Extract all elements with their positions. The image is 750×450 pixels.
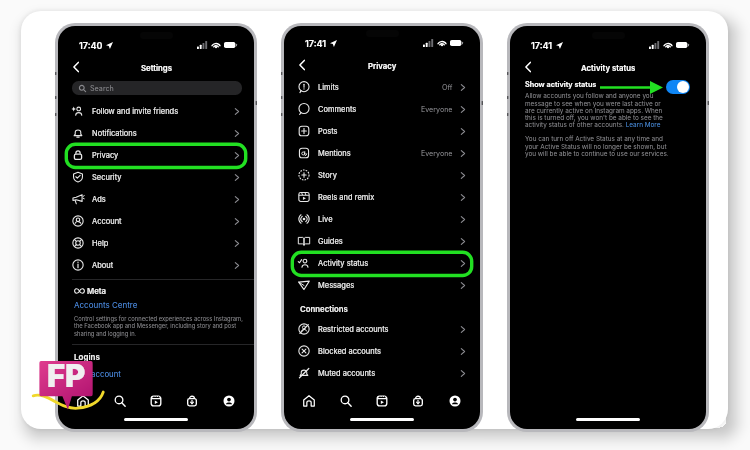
staticText: You can turn off Active Status at any ti… <box>525 135 671 157</box>
button[interactable]: Posts <box>284 120 480 142</box>
button[interactable]: Add account <box>74 369 121 378</box>
button[interactable]: Search <box>109 390 131 412</box>
button[interactable]: Reels and remix <box>284 186 480 208</box>
button[interactable]: Live <box>284 208 480 230</box>
staticText: Logins <box>74 352 100 362</box>
staticText: Privacy <box>92 151 119 160</box>
button[interactable]: Reels <box>371 390 393 412</box>
button[interactable]: Ads <box>58 188 254 210</box>
staticText: Posts <box>318 127 338 136</box>
staticText: Notifications <box>92 129 137 138</box>
staticText: Activity status <box>581 63 636 72</box>
button[interactable]: Comments <box>284 98 480 120</box>
button[interactable]: Search <box>72 81 242 95</box>
button[interactable]: Notifications <box>58 122 254 144</box>
button[interactable]: Restricted accounts <box>284 318 480 340</box>
button[interactable]: Guides <box>284 230 480 252</box>
staticText: Show activity status <box>525 80 597 89</box>
staticText: Connections <box>300 304 348 313</box>
staticText: Search <box>90 84 114 93</box>
button[interactable]: Shop <box>181 390 203 412</box>
button[interactable]: Security <box>58 166 254 188</box>
staticText: Privacy <box>368 61 397 70</box>
staticText: Everyone <box>421 105 453 114</box>
staticText: Everyone <box>421 149 453 158</box>
button[interactable]: Muted accounts <box>284 362 480 384</box>
button[interactable]: Messages <box>284 274 480 296</box>
button[interactable]: About <box>58 254 254 276</box>
button[interactable]: Activity status <box>284 252 480 274</box>
staticText: Muted accounts <box>318 369 376 378</box>
staticText: Off <box>442 83 453 92</box>
staticText: Ads <box>92 195 106 204</box>
staticText: Live <box>318 215 333 224</box>
button[interactable]: Mentions <box>284 142 480 164</box>
button[interactable]: Story <box>284 164 480 186</box>
staticText: Follow and invite friends <box>92 107 179 116</box>
staticText: Security <box>92 173 122 182</box>
button[interactable]: Search <box>335 390 357 412</box>
button[interactable]: Profile <box>218 390 240 412</box>
button[interactable]: Shop <box>407 390 429 412</box>
staticText: Comments <box>318 105 357 114</box>
button[interactable]: Home <box>298 390 320 412</box>
button[interactable]: Back <box>292 55 312 75</box>
button[interactable]: Back <box>518 57 538 77</box>
button[interactable]: Profile <box>444 390 466 412</box>
staticText: Account <box>92 217 122 226</box>
button[interactable]: Toggle show activity status <box>666 80 690 94</box>
button[interactable]: Accounts Centre <box>74 300 138 310</box>
button[interactable]: Help <box>58 232 254 254</box>
staticText: Restricted accounts <box>318 325 389 334</box>
staticText: Blocked accounts <box>318 347 382 356</box>
button[interactable]: Follow and invite friends <box>58 100 254 122</box>
staticText: Control settings for connected experienc… <box>74 315 248 337</box>
button[interactable]: Home <box>72 390 94 412</box>
staticText: 17:41 <box>305 38 327 49</box>
staticText: Settings <box>141 63 172 72</box>
button[interactable]: Limits <box>284 76 480 98</box>
staticText: Limits <box>318 83 339 92</box>
staticText: Guides <box>318 237 343 246</box>
button[interactable]: Back <box>66 57 86 77</box>
staticText: 17:40 <box>79 40 103 51</box>
staticText: 17:41 <box>531 40 553 51</box>
button[interactable]: Blocked accounts <box>284 340 480 362</box>
staticText: About <box>92 261 114 270</box>
staticText: Allow accounts you follow and anyone you… <box>525 92 671 128</box>
button[interactable]: Account <box>58 210 254 232</box>
staticText: Reels and remix <box>318 193 375 202</box>
staticText: Help <box>92 239 109 248</box>
staticText: Meta <box>87 286 107 295</box>
staticText: Story <box>318 171 337 180</box>
staticText: FP <box>47 357 86 395</box>
staticText: Mentions <box>318 149 351 158</box>
button[interactable]: Reels <box>145 390 167 412</box>
staticText: Activity status <box>318 259 369 268</box>
button[interactable]: Privacy <box>58 144 254 166</box>
staticText: Messages <box>318 281 355 290</box>
